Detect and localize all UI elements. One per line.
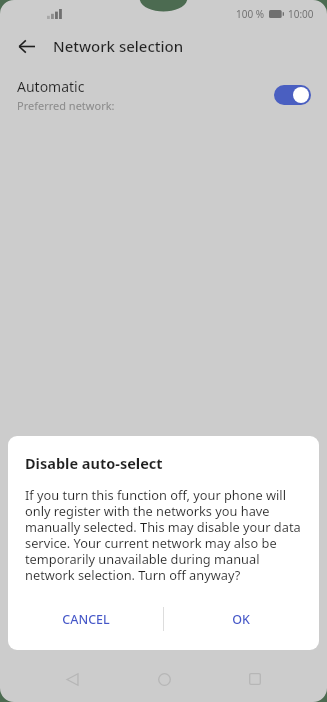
staticText: If you turn this function off, your phon… [25, 486, 305, 584]
button[interactable]: Home [144, 659, 184, 699]
staticText: 10:00 [288, 7, 314, 21]
staticText: Preferred network: [17, 98, 115, 113]
staticText: CANCEL [62, 611, 110, 628]
staticText: OK [232, 611, 250, 628]
button[interactable]: CANCEL [8, 600, 163, 638]
staticText: Network selection [53, 36, 184, 56]
staticText: Disable auto-select [25, 453, 163, 473]
staticText: 100 % [236, 7, 265, 21]
button[interactable]: Automatic [0, 74, 327, 116]
button[interactable]: Back [9, 29, 43, 63]
button[interactable]: Automatic network selection toggle [274, 85, 311, 105]
button[interactable]: Recent apps [235, 659, 275, 699]
button[interactable]: Back [52, 659, 92, 699]
button[interactable]: OK [163, 600, 319, 638]
staticText: Automatic [17, 77, 85, 96]
